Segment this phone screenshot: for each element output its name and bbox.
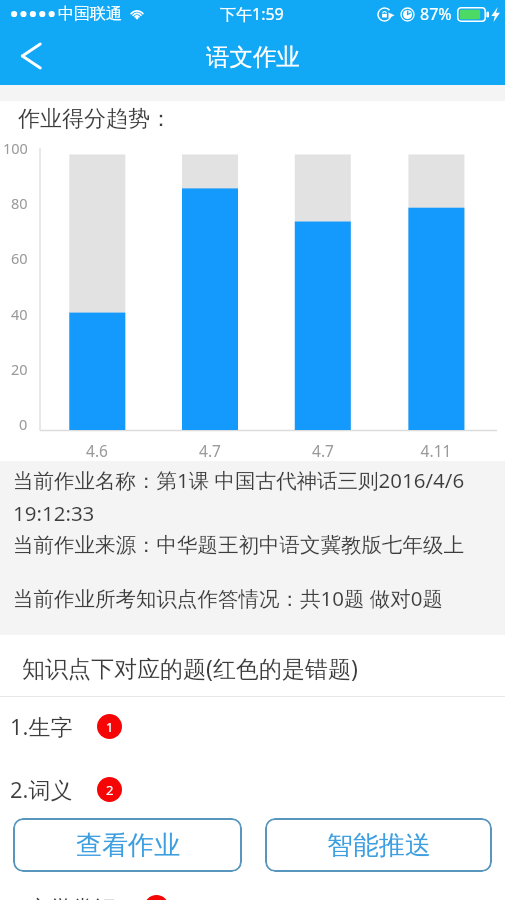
staticText: 4.7 [180, 440, 240, 461]
staticText: 知识点下对应的题(红色的是错题) [22, 652, 358, 683]
staticText: 下午1:59 [220, 3, 284, 25]
staticText: 20 [11, 359, 28, 379]
staticText: 40 [11, 304, 28, 324]
staticText: 当前作业所考知识点作答情况：共10题 做对0题 [13, 584, 444, 612]
staticText: 当前作业来源：中华题王初中语文冀教版七年级上 [13, 532, 464, 558]
staticText: 查看作业 [76, 829, 180, 862]
staticText: 80 [11, 193, 28, 213]
staticText: 1.生字 [10, 711, 73, 741]
staticText: 当前作业名称：第1课 中国古代神话三则2016/4/6 19:12:33 [13, 466, 465, 527]
staticText: 4.11 [406, 440, 466, 461]
staticText: 4.7 [293, 440, 353, 461]
staticText: 4.6 [67, 440, 127, 461]
staticText: 语文作业 [206, 42, 300, 72]
button[interactable]: 3.文学常识 [0, 882, 505, 900]
staticText: 3.文学常识 [10, 892, 117, 900]
staticText: 100 [3, 138, 28, 158]
staticText: 智能推送 [327, 829, 431, 862]
button[interactable]: 1.生字 [0, 701, 505, 751]
button[interactable]: 2.词义 [0, 764, 505, 814]
staticText: 作业得分趋势： [18, 105, 172, 133]
staticText: 2.词义 [10, 774, 73, 804]
staticText: 2 [106, 781, 114, 799]
staticText: 60 [11, 248, 28, 268]
button[interactable]: Back [0, 28, 56, 85]
staticText: 1 [106, 718, 114, 736]
button[interactable]: 智能推送 [265, 818, 492, 872]
staticText: 中国联通 [58, 4, 122, 24]
button[interactable]: 查看作业 [13, 818, 242, 872]
staticText: 0 [19, 414, 28, 434]
staticText: 87% [420, 3, 452, 25]
